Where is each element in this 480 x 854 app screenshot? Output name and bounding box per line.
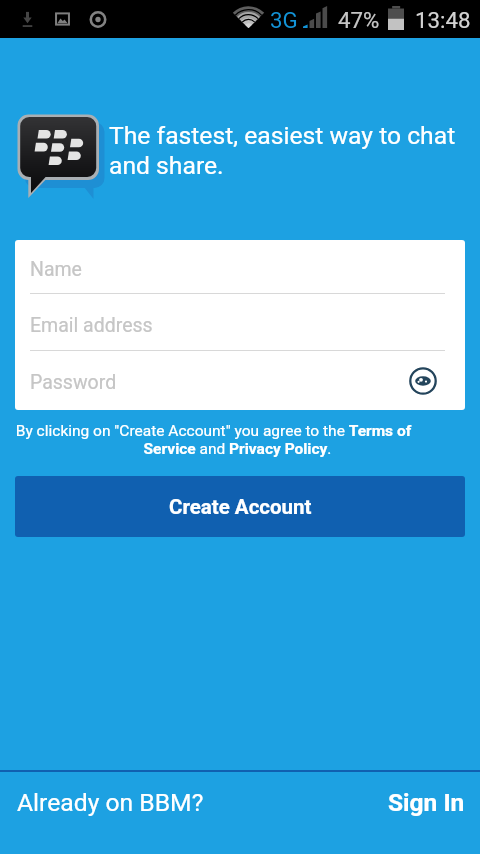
staticText: 47% (338, 7, 380, 33)
staticText: 13:48 (415, 7, 471, 33)
staticText: Sign In (388, 788, 465, 817)
staticText: Name (30, 258, 438, 281)
staticText: By clicking on "Create Account" you agre… (1, 422, 426, 440)
staticText: 3G (270, 7, 298, 33)
button[interactable]: Sign In (384, 784, 469, 821)
staticText: The fastest, easiest way to chat and sha… (109, 121, 469, 180)
button[interactable]: Show password (408, 366, 438, 396)
staticText: Already on BBM? (17, 788, 204, 817)
staticText: Email address (30, 314, 438, 337)
staticText: Password (30, 371, 408, 394)
button[interactable]: Create Account (15, 476, 465, 537)
staticText: Create Account (169, 495, 312, 519)
staticText: Service and Privacy Policy. (25, 440, 450, 458)
